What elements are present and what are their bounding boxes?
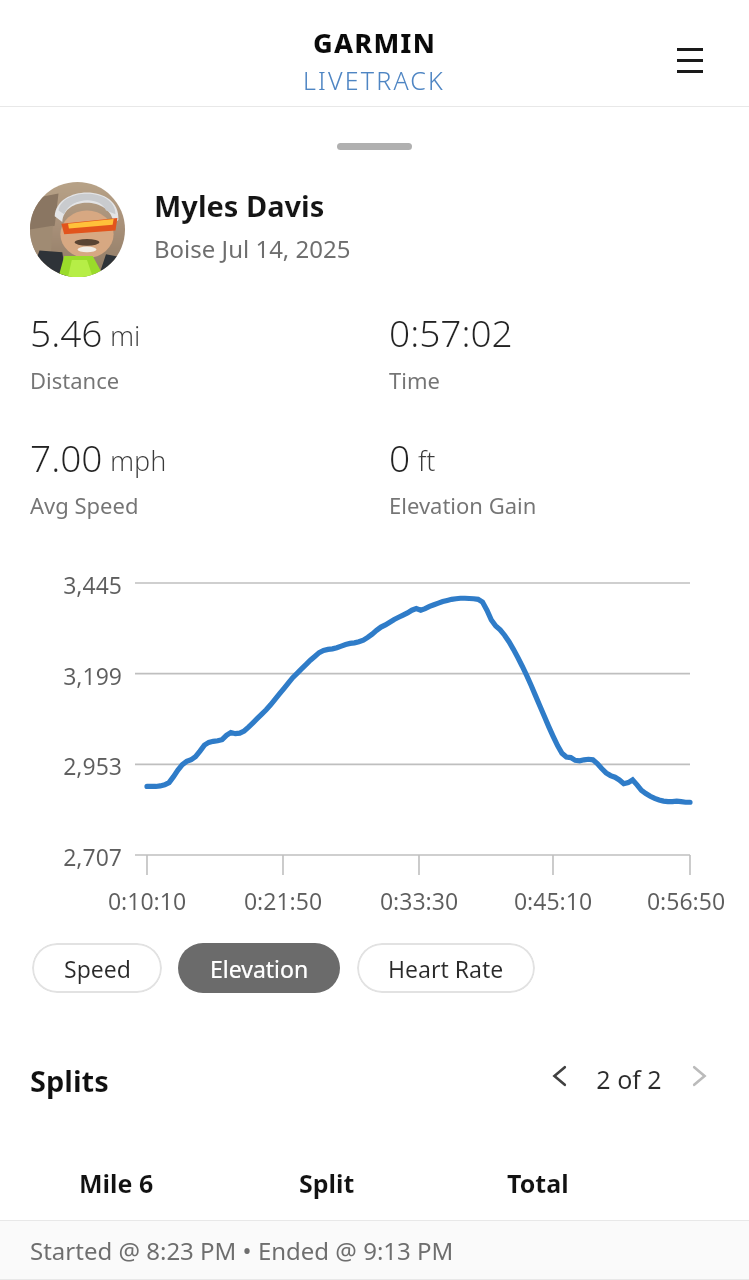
button[interactable]: Speed	[32, 943, 162, 993]
staticText: Elevation Gain	[389, 490, 537, 520]
staticText: Speed	[64, 953, 131, 984]
button[interactable]: Next page	[679, 1056, 719, 1096]
staticText: Mile 6	[79, 1166, 154, 1200]
staticText: Distance	[30, 365, 120, 395]
staticText: 0:57:02	[389, 307, 513, 357]
staticText: LIVETRACK	[303, 63, 446, 97]
staticText: Boise Jul 14, 2025	[154, 232, 351, 265]
staticText: 0:45:10	[503, 885, 603, 916]
staticText: mph	[110, 442, 167, 479]
button[interactable]: Previous page	[540, 1056, 580, 1096]
staticText: 0:56:50	[636, 885, 736, 916]
staticText: 0:21:50	[233, 885, 333, 916]
button[interactable]: Elevation	[178, 943, 340, 993]
staticText: 3,199	[42, 660, 122, 691]
staticText: 2,707	[42, 841, 122, 872]
staticText: Split	[299, 1166, 355, 1200]
staticText: mi	[110, 317, 141, 354]
staticText: 2,953	[42, 750, 122, 781]
staticText: Avg Speed	[30, 490, 139, 520]
staticText: Started @ 8:23 PM • Ended @ 9:13 PM	[30, 1234, 454, 1267]
staticText: 2 of 2	[589, 1062, 669, 1096]
staticText: 0:10:10	[97, 885, 197, 916]
staticText: 3,445	[42, 569, 122, 600]
button[interactable]: Profile photo	[30, 182, 125, 277]
staticText: 0:33:30	[369, 885, 469, 916]
staticText: 7.00	[30, 432, 103, 482]
staticText: Time	[389, 365, 440, 395]
staticText: Heart Rate	[388, 953, 504, 984]
staticText: Total	[507, 1166, 569, 1200]
staticText: 5.46	[30, 307, 103, 357]
staticText: Splits	[30, 1061, 109, 1100]
button[interactable]: Menu	[664, 34, 716, 86]
button[interactable]: Heart Rate	[357, 943, 535, 993]
staticText: Elevation	[210, 953, 309, 984]
staticText: Myles Davis	[154, 186, 325, 225]
staticText: 0	[389, 432, 411, 482]
staticText: GARMIN	[313, 24, 437, 61]
staticText: ft	[418, 442, 436, 479]
